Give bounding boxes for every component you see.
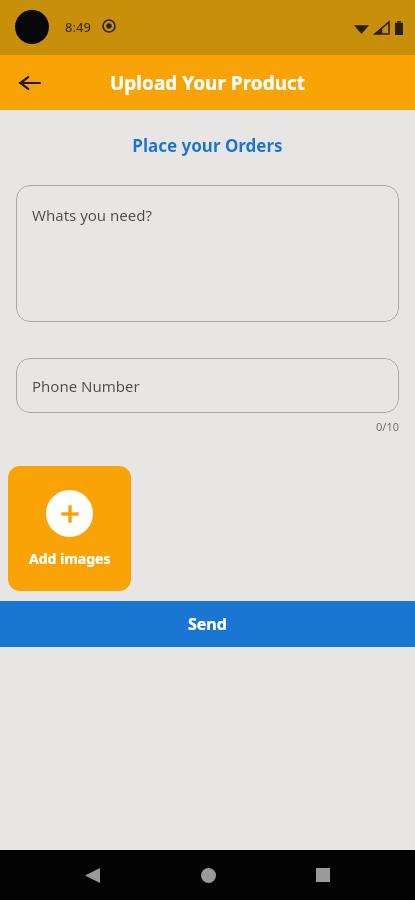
staticText: Send: [188, 613, 227, 635]
button[interactable]: Home: [184, 851, 232, 899]
staticText: Whats you need?: [32, 205, 152, 225]
button[interactable]: Phone Number: [16, 358, 399, 413]
button[interactable]: Back: [68, 851, 116, 899]
staticText: Phone Number: [32, 376, 140, 396]
staticText: 8:49: [65, 18, 91, 36]
staticText: Upload Your Product: [110, 70, 306, 96]
button[interactable]: Recent apps: [299, 851, 347, 899]
staticText: 0/10: [0, 419, 399, 434]
button[interactable]: Whats you need?: [16, 185, 399, 322]
button[interactable]: Add images: [8, 466, 131, 591]
button[interactable]: Back: [8, 61, 52, 105]
button[interactable]: Send: [0, 601, 415, 647]
staticText: Place your Orders: [0, 134, 415, 157]
staticText: Add images: [29, 549, 111, 568]
